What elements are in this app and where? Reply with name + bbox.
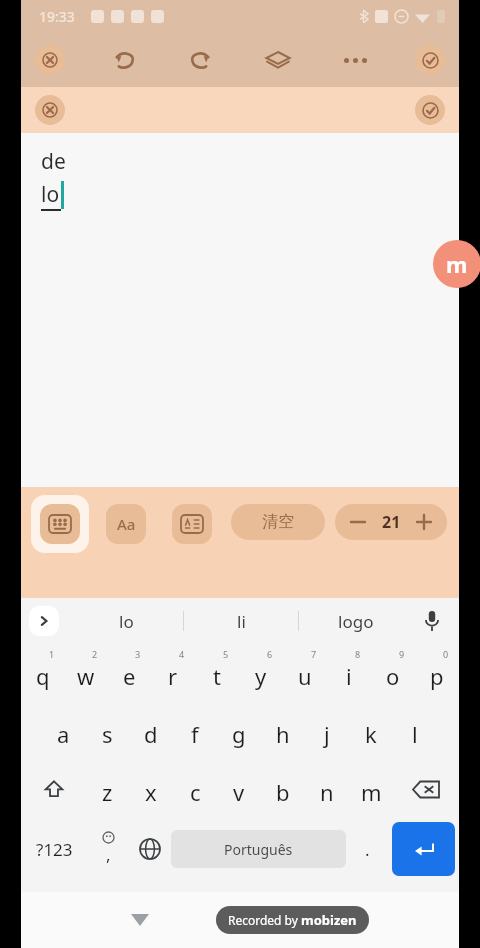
staticText: 4 (179, 648, 185, 660)
staticText: o (386, 661, 400, 691)
button[interactable]: 1 (21, 644, 64, 702)
button[interactable]: 4 (151, 644, 195, 702)
staticText: lo (41, 180, 60, 209)
staticText: logo (338, 610, 374, 633)
button[interactable]: c (173, 760, 217, 818)
staticText: w (77, 661, 95, 691)
button[interactable]: Mobizen recorder (433, 240, 480, 288)
button[interactable]: l (393, 702, 437, 760)
button[interactable]: g (217, 702, 261, 760)
button[interactable]: Apply (415, 95, 445, 125)
staticText: f (191, 719, 199, 749)
button[interactable]: Enter (392, 822, 455, 876)
button[interactable]: Emoji and comma (87, 818, 129, 880)
staticText: li (237, 610, 246, 633)
button[interactable]: s (85, 702, 129, 760)
staticText: m (361, 777, 382, 807)
button[interactable]: Voice input (417, 606, 447, 636)
staticText: t (213, 661, 221, 691)
button[interactable]: j (305, 702, 349, 760)
button[interactable]: 7 (283, 644, 327, 702)
button[interactable]: 8 (327, 644, 371, 702)
staticText: 0 (443, 648, 449, 660)
staticText: q (36, 661, 50, 691)
button[interactable]: 3 (107, 644, 151, 702)
staticText: y (255, 661, 267, 691)
staticText: , (106, 843, 111, 866)
button[interactable]: Hide keyboard (122, 902, 158, 938)
staticText: lo (119, 610, 134, 633)
button[interactable]: v (217, 760, 261, 818)
button[interactable]: 清空 (231, 504, 325, 540)
staticText: g (232, 719, 246, 749)
staticText: m (446, 249, 468, 279)
button[interactable]: logo (299, 598, 413, 644)
staticText: k (365, 719, 377, 749)
button[interactable]: b (261, 760, 305, 818)
button[interactable]: li (184, 598, 298, 644)
staticText: r (168, 661, 178, 691)
staticText: d (144, 719, 158, 749)
button[interactable]: More options (338, 43, 372, 77)
staticText: b (276, 777, 290, 807)
button[interactable]: a (42, 702, 85, 760)
button[interactable]: ?123 (21, 818, 87, 880)
staticText: 8 (355, 648, 361, 660)
staticText: 3 (135, 648, 141, 660)
button[interactable]: Confirm (415, 45, 445, 75)
staticText: j (324, 719, 330, 749)
button[interactable]: Decrease size (345, 509, 371, 535)
button[interactable]: m (349, 760, 393, 818)
staticText: 1 (49, 648, 55, 660)
button[interactable]: d (129, 702, 173, 760)
button[interactable]: Expand toolbar (29, 606, 59, 636)
staticText: 7 (311, 648, 317, 660)
staticText: h (276, 719, 290, 749)
staticText: Recorded by (228, 912, 301, 928)
button[interactable]: Close (35, 45, 65, 75)
staticText: p (430, 661, 444, 691)
button[interactable]: Undo (107, 43, 141, 77)
button[interactable]: z (86, 760, 129, 818)
button[interactable]: Shift (21, 760, 86, 818)
button[interactable]: Português (171, 830, 346, 868)
button[interactable]: Change language (129, 818, 171, 880)
staticText: 5 (223, 648, 229, 660)
button[interactable]: 9 (371, 644, 415, 702)
button[interactable]: x (129, 760, 173, 818)
staticText: s (102, 719, 113, 749)
staticText: mobizen (301, 911, 357, 929)
staticText: v (233, 777, 245, 807)
staticText: n (320, 777, 334, 807)
button[interactable]: Alignment (163, 495, 221, 553)
staticText: z (102, 777, 113, 807)
button[interactable]: Increase size (411, 509, 437, 535)
staticText: 9 (399, 648, 405, 660)
button[interactable]: 0 (415, 644, 459, 702)
button[interactable]: Font (97, 495, 155, 553)
button[interactable]: 6 (239, 644, 283, 702)
staticText: u (298, 661, 312, 691)
staticText: c (190, 777, 201, 807)
staticText: 2 (92, 648, 98, 660)
button[interactable]: Keyboard (31, 495, 89, 553)
button[interactable]: n (305, 760, 349, 818)
button[interactable]: 5 (195, 644, 239, 702)
button[interactable]: h (261, 702, 305, 760)
button[interactable]: Redo (184, 43, 218, 77)
staticText: 6 (267, 648, 273, 660)
button[interactable]: Layers (261, 43, 295, 77)
button[interactable]: 2 (64, 644, 107, 702)
button[interactable]: f (173, 702, 217, 760)
staticText: 19:33 (39, 7, 75, 26)
button[interactable]: k (349, 702, 393, 760)
button[interactable]: Backspace (393, 760, 459, 818)
staticText: x (145, 777, 157, 807)
button[interactable]: Cancel (35, 95, 65, 125)
staticText: l (412, 719, 418, 749)
button[interactable]: lo (69, 598, 183, 644)
staticText: Português (224, 840, 293, 859)
button[interactable]: . (346, 818, 388, 880)
staticText: i (346, 661, 352, 691)
staticText: 21 (382, 511, 401, 533)
